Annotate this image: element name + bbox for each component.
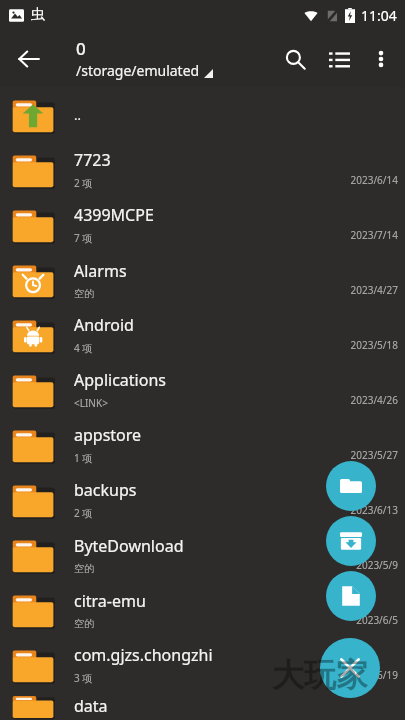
staticText: .. [74,106,81,124]
button[interactable]: backups [0,472,405,527]
staticText: 空的 [74,617,94,630]
button[interactable]: data [0,692,405,720]
staticText: 2023/4/26 [336,393,398,407]
button[interactable]: ByteDownload [0,527,405,582]
button[interactable]: Back [6,36,52,82]
staticText: 空的 [74,562,94,575]
staticText: 2023/5/27 [336,448,398,462]
staticText: 4 项 [74,341,93,355]
staticText: Alarms [74,260,127,282]
staticText: <LINK> [74,396,108,410]
staticText: 2 项 [74,176,93,190]
staticText: citra-emu [74,590,146,612]
staticText: 2023/5/18 [336,338,398,352]
staticText: 2023/4/27 [336,283,398,297]
staticText: 3 项 [74,671,93,685]
staticText: 空的 [74,287,94,300]
button[interactable]: 0 [76,37,213,80]
button[interactable]: Applications [0,362,405,417]
button[interactable]: Search [273,37,317,81]
button[interactable]: Close menu [320,638,380,698]
staticText: 2023/6/14 [336,173,398,187]
staticText: 11:04 [361,6,397,25]
staticText: Android [74,314,134,336]
staticText: 2023/6/13 [336,503,398,517]
staticText: data [74,695,108,717]
button[interactable]: com.gjzs.chongzhi [0,637,405,692]
button[interactable]: appstore [0,417,405,472]
staticText: 2023/5/9 [336,558,398,572]
staticText: 2023/6/5 [336,613,398,627]
button[interactable]: Alarms [0,252,405,307]
button[interactable]: More options [361,39,401,79]
staticText: 4399MCPE [74,204,154,226]
staticText: 虫 [31,6,45,24]
staticText: 2023/6/19 [336,668,398,682]
staticText: 2 项 [74,506,93,520]
staticText: Applications [74,369,166,391]
staticText: 0 [76,37,86,60]
button[interactable]: New file [326,571,376,621]
staticText: 2023/7/14 [336,228,398,242]
button[interactable]: Android [0,307,405,362]
staticText: appstore [74,424,142,446]
button[interactable]: citra-emu [0,582,405,637]
staticText: ByteDownload [74,535,184,557]
button[interactable]: 4399MCPE [0,197,405,252]
button[interactable]: New folder [326,461,376,511]
button[interactable]: Extract archive [326,516,376,566]
staticText: backups [74,479,137,501]
staticText: 大玩家 [272,655,368,695]
staticText: /storage/emulated [76,61,200,80]
staticText: 7723 [74,149,111,171]
button[interactable]: 7723 [0,142,405,197]
button[interactable]: View mode [317,37,361,81]
staticText: 7 项 [74,231,93,245]
staticText: com.gjzs.chongzhi [74,644,213,666]
button[interactable]: .. [0,87,405,142]
staticText: 1 项 [74,451,93,465]
